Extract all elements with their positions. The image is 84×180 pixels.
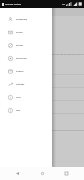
staticText: Profile	[16, 31, 23, 34]
button[interactable]: Favourites	[0, 52, 52, 65]
staticText: Favourites	[16, 57, 27, 60]
button[interactable]: Help	[0, 91, 52, 104]
staticText: Photos	[16, 44, 24, 47]
button[interactable]: Home	[36, 167, 49, 180]
staticText: Android system	[5, 3, 21, 6]
button[interactable]: Friends	[0, 65, 52, 78]
button[interactable]: Recents	[60, 167, 73, 180]
staticText: Lorem ipsum dolor sit amet, consectetur …	[3, 53, 84, 56]
button[interactable]: Info	[0, 104, 52, 117]
staticText: 4G	[62, 3, 65, 6]
staticText: Settings	[16, 83, 25, 86]
staticText: Info	[16, 109, 21, 112]
button[interactable]: Settings	[0, 78, 52, 91]
staticText: Help	[16, 96, 21, 99]
button[interactable]: Dashboard	[0, 13, 52, 26]
button[interactable]: Profile	[0, 26, 52, 39]
staticText: Friends	[16, 70, 24, 73]
button[interactable]: Photos	[0, 39, 52, 52]
staticText: Dashboard	[16, 18, 28, 21]
button[interactable]: Back	[11, 167, 24, 180]
